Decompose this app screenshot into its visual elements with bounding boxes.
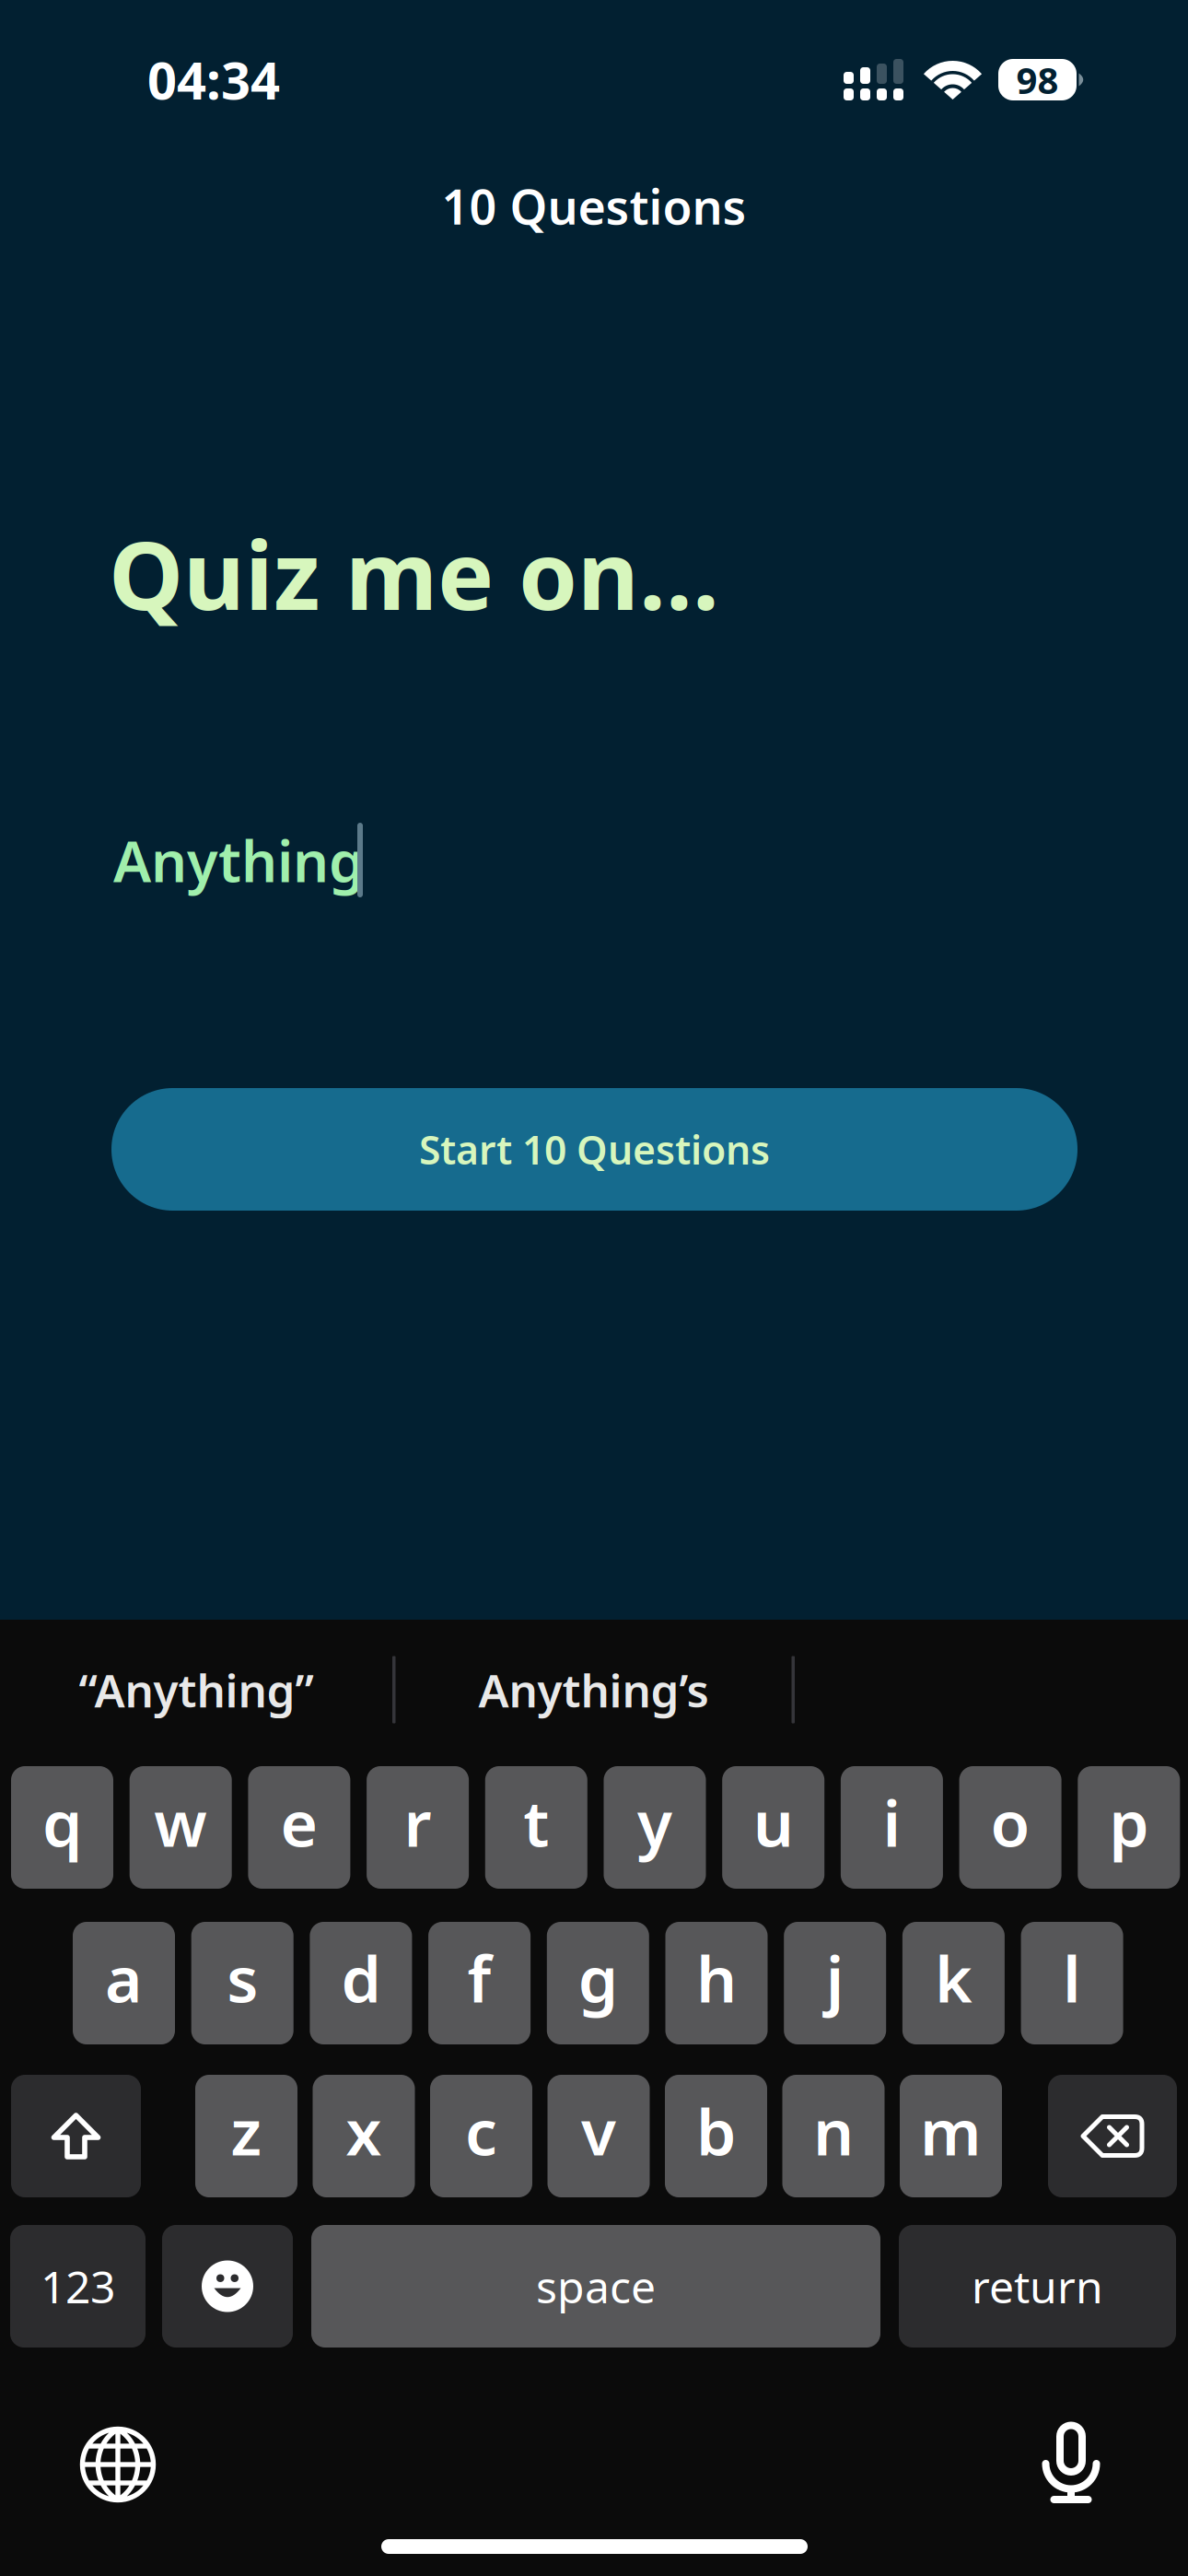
staticText: c xyxy=(465,2088,497,2173)
button[interactable]: r xyxy=(367,1766,469,1889)
staticText: b xyxy=(696,2088,736,2173)
button[interactable]: b xyxy=(665,2075,767,2197)
staticText: Anything’s xyxy=(478,1659,709,1720)
button[interactable]: f xyxy=(428,1922,531,2044)
staticText: Start 10 Questions xyxy=(419,1123,770,1176)
staticText: f xyxy=(467,1935,491,2020)
button[interactable]: n xyxy=(782,2075,885,2197)
button[interactable]: z xyxy=(195,2075,297,2197)
staticText: s xyxy=(227,1935,258,2020)
staticText: e xyxy=(280,1780,318,1864)
button[interactable]: Anything’s xyxy=(396,1650,792,1729)
staticText: w xyxy=(154,1780,207,1864)
staticText: p xyxy=(1109,1780,1149,1864)
button[interactable]: t xyxy=(485,1766,587,1889)
staticText: o xyxy=(991,1780,1030,1864)
button[interactable]: d xyxy=(310,1922,412,2044)
staticText: return xyxy=(972,2257,1103,2316)
staticText: h xyxy=(696,1935,737,2020)
button[interactable]: s xyxy=(191,1922,294,2044)
staticText: a xyxy=(105,1935,143,2020)
button[interactable]: i xyxy=(841,1766,943,1889)
button[interactable]: return xyxy=(899,2225,1176,2348)
button[interactable]: space xyxy=(311,2225,880,2348)
staticText: t xyxy=(523,1780,549,1864)
staticText: 123 xyxy=(41,2257,115,2316)
staticText: u xyxy=(753,1780,794,1864)
button[interactable]: v xyxy=(547,2075,650,2197)
button[interactable]: o xyxy=(959,1766,1061,1889)
staticText: j xyxy=(826,1935,844,2020)
button[interactable]: Delete xyxy=(1048,2075,1177,2197)
button[interactable]: “Anything” xyxy=(0,1650,392,1729)
staticText: i xyxy=(883,1780,901,1864)
staticText: 10 Questions xyxy=(442,174,746,238)
button[interactable]: j xyxy=(784,1922,886,2044)
button[interactable]: m xyxy=(900,2075,1002,2197)
button[interactable]: Dictation xyxy=(1042,2421,1101,2504)
staticText: 98 xyxy=(1016,55,1059,104)
button[interactable]: h xyxy=(665,1922,768,2044)
staticText: r xyxy=(404,1780,432,1864)
button[interactable]: Shift xyxy=(11,2075,141,2197)
button[interactable]: e xyxy=(248,1766,350,1889)
button[interactable]: q xyxy=(11,1766,113,1889)
button[interactable]: g xyxy=(547,1922,649,2044)
staticText: z xyxy=(231,2088,262,2173)
button[interactable]: w xyxy=(130,1766,232,1889)
button[interactable]: Emoji xyxy=(162,2225,293,2348)
staticText: q xyxy=(42,1780,82,1864)
staticText: m xyxy=(920,2088,982,2173)
staticText: Anything xyxy=(113,823,364,898)
button[interactable]: x xyxy=(313,2075,415,2197)
button[interactable]: p xyxy=(1078,1766,1180,1889)
button[interactable]: u xyxy=(722,1766,824,1889)
button[interactable]: y xyxy=(604,1766,706,1889)
button[interactable]: Next keyboard xyxy=(77,2424,158,2505)
staticText: k xyxy=(935,1935,972,2020)
button[interactable]: Start 10 Questions xyxy=(111,1088,1077,1211)
staticText: x xyxy=(346,2088,382,2173)
button[interactable]: k xyxy=(902,1922,1005,2044)
button[interactable]: 123 xyxy=(10,2225,146,2348)
button[interactable]: a xyxy=(73,1922,175,2044)
staticText: Quiz me on... xyxy=(109,510,719,636)
staticText: v xyxy=(581,2088,616,2173)
staticText: y xyxy=(637,1780,672,1864)
staticText: n xyxy=(813,2088,854,2173)
staticText: g xyxy=(578,1935,618,2020)
staticText: d xyxy=(341,1935,381,2020)
button[interactable]: c xyxy=(430,2075,532,2197)
staticText: l xyxy=(1063,1935,1081,2020)
staticText: space xyxy=(536,2257,656,2316)
staticText: 04:34 xyxy=(147,45,280,114)
staticText: “Anything” xyxy=(79,1659,314,1720)
button[interactable]: l xyxy=(1021,1922,1123,2044)
